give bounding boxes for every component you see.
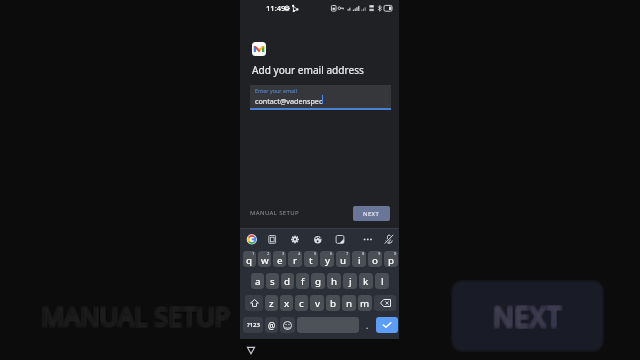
staticText: v (315, 297, 320, 310)
button[interactable]: 6 (320, 251, 334, 267)
button[interactable]: v (310, 295, 324, 311)
button[interactable]: f (296, 273, 309, 289)
staticText: NEXT (494, 297, 563, 334)
staticText: NEXT (491, 297, 560, 334)
button[interactable]: NEXT (353, 206, 390, 221)
staticText: NEXT (493, 300, 562, 337)
button[interactable]: b (326, 295, 340, 311)
staticText: MANUAL SETUP (40, 300, 230, 335)
button[interactable]: @ (265, 317, 278, 333)
staticText: 7 (346, 251, 349, 256)
staticText: NEXT (495, 299, 564, 336)
button[interactable]: a (251, 273, 264, 289)
button[interactable]: m (358, 295, 372, 311)
staticText: MANUAL SETUP (42, 299, 232, 334)
button[interactable]: 2 (258, 251, 271, 267)
button[interactable]: Enter (376, 317, 398, 333)
staticText: NEXT (494, 300, 563, 337)
staticText: NEXT (491, 296, 560, 333)
staticText: MANUAL SETUP (40, 301, 230, 336)
staticText: MANUAL SETUP (43, 299, 233, 334)
staticText: MANUAL SETUP (39, 301, 229, 336)
staticText: NEXT (494, 299, 563, 336)
staticText: MANUAL SETUP (40, 298, 230, 333)
staticText: i (358, 254, 361, 267)
button[interactable]: 7 (336, 251, 350, 267)
staticText: c (299, 297, 304, 310)
staticText: NEXT (492, 298, 561, 335)
staticText: MANUAL SETUP (42, 298, 232, 333)
staticText: NEXT (495, 297, 564, 334)
button[interactable]: 0 (384, 251, 398, 267)
staticText: NEXT (494, 298, 563, 335)
button[interactable]: 9 (368, 251, 382, 267)
staticText: MANUAL SETUP (43, 301, 233, 336)
staticText: a (255, 275, 261, 288)
button[interactable]: c (295, 295, 308, 311)
button[interactable]: x (280, 295, 293, 311)
button[interactable]: j (343, 273, 357, 289)
staticText: MANUAL SETUP (43, 298, 233, 333)
button[interactable]: Emoji (280, 317, 295, 333)
button[interactable]: n (342, 295, 356, 311)
staticText: NEXT (493, 297, 562, 334)
button[interactable]: d (281, 273, 294, 289)
staticText: w (261, 254, 269, 267)
button[interactable]: z (265, 295, 278, 311)
button[interactable]: Shift (245, 295, 263, 311)
staticText: h (331, 275, 338, 288)
staticText: MANUAL SETUP (41, 297, 231, 332)
staticText: NEXT (491, 300, 560, 337)
staticText: j (349, 275, 352, 288)
button[interactable]: g (311, 273, 325, 289)
staticText: @ (268, 320, 276, 331)
staticText: NEXT (493, 296, 562, 333)
staticText: NEXT (491, 299, 560, 336)
button[interactable]: l (375, 273, 389, 289)
button[interactable]: 4 (288, 251, 302, 267)
staticText: d (284, 275, 291, 288)
staticText: p (388, 254, 395, 267)
staticText: MANUAL SETUP (39, 299, 229, 334)
button[interactable]: Back (245, 344, 257, 356)
button[interactable]: Period (361, 317, 374, 333)
button[interactable]: Backspace (374, 295, 396, 311)
staticText: s (270, 275, 275, 288)
staticText: m (360, 297, 370, 310)
button[interactable]: ?123 (243, 317, 263, 333)
staticText: k (363, 275, 369, 288)
staticText: . (366, 320, 369, 331)
button[interactable]: MANUAL SETUP (249, 206, 300, 220)
staticText: o (372, 254, 378, 267)
staticText: MANUAL SETUP (43, 297, 233, 332)
button[interactable]: s (266, 273, 279, 289)
staticText: MANUAL SETUP (39, 297, 229, 332)
staticText: g (315, 275, 322, 288)
button[interactable]: k (359, 273, 373, 289)
staticText: NEXT (492, 297, 561, 334)
staticText: 11:49 (266, 3, 286, 13)
staticText: NEXT (491, 298, 560, 335)
staticText: MANUAL SETUP (250, 209, 299, 217)
staticText: MANUAL SETUP (41, 298, 231, 333)
staticText: z (269, 297, 274, 310)
staticText: x (284, 297, 290, 310)
button[interactable]: 5 (304, 251, 318, 267)
staticText: f (301, 275, 305, 288)
staticText: q (246, 254, 253, 267)
staticText: 1 (252, 251, 255, 256)
button[interactable]: 1 (243, 251, 256, 267)
button[interactable]: h (327, 273, 341, 289)
staticText: NEXT (494, 296, 563, 333)
staticText: 3 (282, 251, 285, 256)
button[interactable]: 8 (352, 251, 366, 267)
staticText: MANUAL SETUP (39, 298, 229, 333)
staticText: b (330, 297, 337, 310)
button[interactable]: 3 (273, 251, 286, 267)
staticText: MANUAL SETUP (41, 300, 231, 335)
staticText: n (346, 297, 353, 310)
staticText: r (293, 254, 298, 267)
staticText: t (309, 254, 313, 267)
staticText: 0 (394, 251, 397, 256)
